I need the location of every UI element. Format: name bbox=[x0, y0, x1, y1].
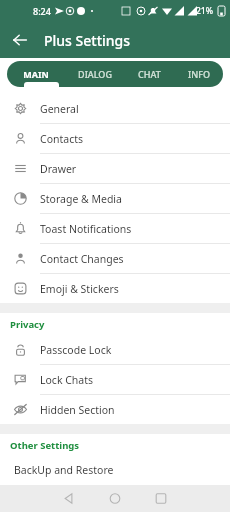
button[interactable]: Passcode Lock bbox=[0, 335, 230, 365]
button[interactable]: Lock Chats bbox=[0, 365, 230, 395]
staticText: 8:24 bbox=[33, 5, 51, 17]
staticText: INFO bbox=[188, 68, 210, 80]
staticText: General bbox=[40, 102, 79, 116]
button[interactable]: Back bbox=[6, 26, 34, 54]
button[interactable]: CHAT bbox=[125, 61, 174, 87]
button[interactable]: INFO bbox=[174, 61, 223, 87]
button[interactable]: General bbox=[0, 94, 230, 124]
button[interactable]: Drawer bbox=[0, 154, 230, 184]
staticText: Other Settings bbox=[10, 439, 80, 452]
button[interactable]: Storage & Media bbox=[0, 184, 230, 214]
button[interactable]: DIALOG bbox=[64, 61, 125, 87]
staticText: Toast Notifications bbox=[40, 222, 132, 236]
staticText: Hidden Section bbox=[40, 403, 115, 417]
button[interactable]: Toast Notifications bbox=[0, 214, 230, 244]
staticText: DIALOG bbox=[78, 68, 112, 80]
staticText: BackUp and Restore bbox=[14, 463, 114, 477]
staticText: CHAT bbox=[138, 68, 161, 80]
button[interactable]: Contacts bbox=[0, 124, 230, 154]
staticText: Passcode Lock bbox=[40, 343, 112, 357]
staticText: Storage & Media bbox=[40, 192, 122, 206]
staticText: Contacts bbox=[40, 132, 84, 146]
button[interactable]: Hidden Section bbox=[0, 395, 230, 424]
staticText: Drawer bbox=[40, 162, 77, 176]
staticText: Plus Settings bbox=[44, 31, 131, 50]
button[interactable]: Contact Changes bbox=[0, 244, 230, 274]
staticText: Lock Chats bbox=[40, 373, 94, 387]
staticText: 21% bbox=[196, 5, 213, 17]
staticText: Contact Changes bbox=[40, 252, 124, 266]
button[interactable]: BackUp and Restore bbox=[0, 456, 230, 484]
staticText: Emoji & Stickers bbox=[40, 282, 119, 296]
button[interactable]: Emoji & Stickers bbox=[0, 274, 230, 303]
staticText: MAIN bbox=[23, 68, 49, 80]
button[interactable]: MAIN bbox=[7, 61, 64, 87]
staticText: Privacy bbox=[10, 318, 45, 331]
